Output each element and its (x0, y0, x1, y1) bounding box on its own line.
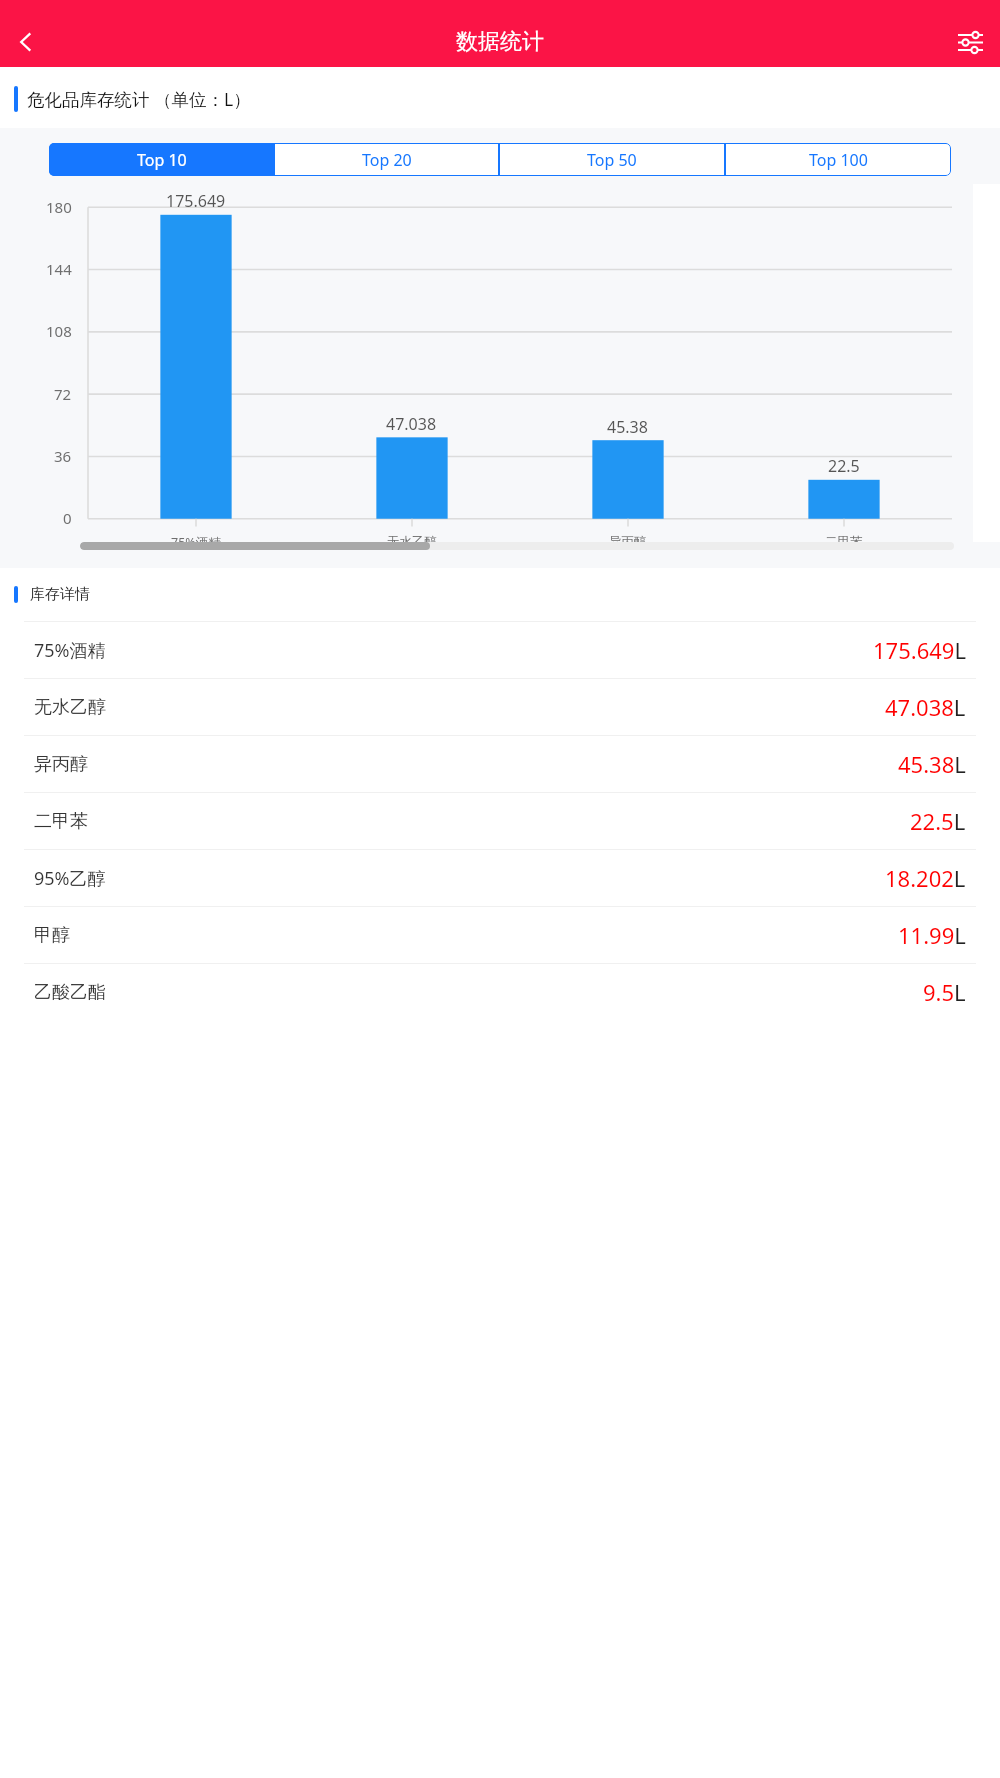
staticText: 95%乙醇 (34, 866, 106, 891)
staticText: 75%酒精 (34, 638, 106, 663)
button[interactable]: Filter settings (947, 19, 993, 65)
staticText: 45.38L (898, 749, 966, 779)
staticText: 二甲苯 (825, 534, 863, 550)
staticText: 库存详情 (30, 585, 90, 604)
staticText: 11.99L (898, 920, 966, 950)
staticText: 72 (54, 384, 72, 404)
staticText: 47.038 (386, 413, 437, 435)
staticText: 108 (46, 321, 72, 341)
staticText: 二甲苯 (34, 810, 88, 833)
staticText: Top 20 (362, 149, 412, 171)
button[interactable]: 二甲苯 (0, 793, 1000, 849)
button[interactable]: Top 100 (725, 143, 951, 176)
staticText: 175.649L (873, 635, 966, 665)
staticText: 45.38 (607, 416, 648, 438)
staticText: Top 10 (137, 149, 187, 171)
button[interactable]: Top 50 (499, 143, 725, 176)
button[interactable]: 异丙醇 (0, 736, 1000, 792)
staticText: 危化品库存统计 （单位：L） (27, 87, 251, 111)
staticText: 无水乙醇 (34, 696, 106, 719)
staticText: 75%酒精 (171, 534, 221, 551)
staticText: 22.5L (910, 806, 966, 836)
staticText: Top 50 (587, 149, 637, 171)
button[interactable]: 乙酸乙酯 (0, 964, 1000, 1020)
staticText: 0 (63, 508, 72, 528)
staticText: 甲醇 (34, 924, 70, 947)
staticText: 乙酸乙酯 (34, 981, 106, 1004)
staticText: 18.202L (885, 863, 966, 893)
staticText: 异丙醇 (34, 753, 88, 776)
staticText: 180 (46, 197, 72, 217)
button[interactable]: 75%酒精 (0, 622, 1000, 678)
staticText: 22.5 (828, 455, 860, 477)
staticText: 数据统计 (456, 28, 544, 56)
staticText: 175.649 (166, 190, 226, 212)
staticText: Top 100 (809, 149, 868, 171)
staticText: 异丙醇 (609, 534, 647, 550)
staticText: 36 (54, 446, 72, 466)
button[interactable]: 无水乙醇 (0, 679, 1000, 735)
button[interactable]: Top 10 (49, 143, 274, 176)
button[interactable]: 甲醇 (0, 907, 1000, 963)
staticText: 9.5L (923, 977, 966, 1007)
button[interactable]: Back (2, 18, 50, 66)
staticText: 47.038L (885, 692, 966, 722)
button[interactable]: 95%乙醇 (0, 850, 1000, 906)
staticText: 无水乙醇 (387, 534, 437, 550)
staticText: 144 (46, 259, 72, 279)
button[interactable]: Top 20 (274, 143, 499, 176)
